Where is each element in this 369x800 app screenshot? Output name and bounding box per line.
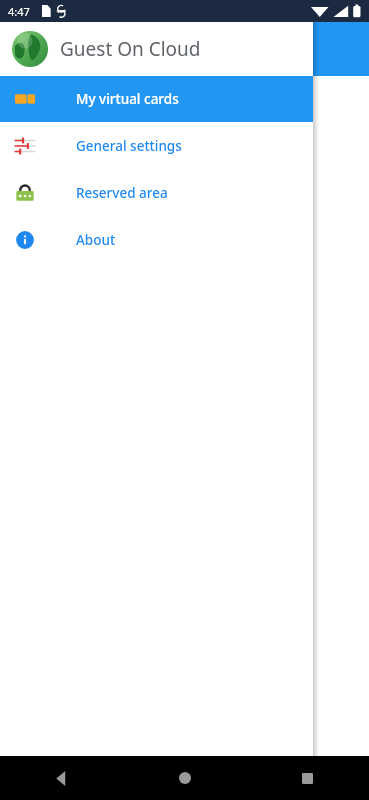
staticText: My virtual cards xyxy=(76,90,179,108)
staticText: About xyxy=(76,231,116,249)
button[interactable]: General settings xyxy=(0,122,313,169)
button[interactable]: My virtual cards xyxy=(0,76,313,122)
staticText: Reserved area xyxy=(76,184,168,202)
button[interactable]: Reserved area xyxy=(0,169,313,216)
staticText: 4:47 xyxy=(8,4,30,19)
button[interactable]: Home xyxy=(123,756,246,800)
button[interactable]: About xyxy=(0,216,313,263)
button[interactable]: Recent apps xyxy=(246,756,369,800)
staticText: Guest On Cloud xyxy=(60,36,201,62)
staticText: General settings xyxy=(76,137,182,155)
button[interactable]: Back xyxy=(0,756,123,800)
